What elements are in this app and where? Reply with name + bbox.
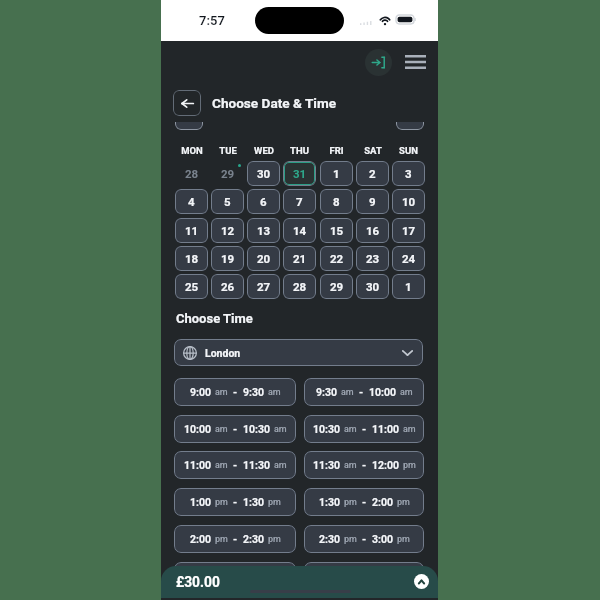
button[interactable]: 1 bbox=[320, 161, 353, 186]
staticText: 11:30 bbox=[313, 459, 341, 471]
staticText: am bbox=[215, 424, 228, 435]
staticText: 6 bbox=[260, 195, 267, 208]
staticText: pm bbox=[268, 534, 281, 545]
button[interactable]: 5 bbox=[211, 189, 244, 214]
staticText: 15 bbox=[330, 224, 344, 237]
button[interactable]: 26 bbox=[211, 274, 244, 299]
button[interactable]: 8 bbox=[320, 189, 353, 214]
staticText: SAT bbox=[364, 145, 382, 156]
button[interactable]: 9 bbox=[356, 189, 389, 214]
staticText: 24 bbox=[402, 252, 416, 265]
button[interactable]: Menu bbox=[398, 48, 432, 76]
button[interactable]: Sign in bbox=[365, 49, 392, 76]
staticText: - bbox=[233, 533, 238, 545]
button[interactable]: Expand details bbox=[414, 574, 429, 589]
staticText: 26 bbox=[221, 280, 235, 293]
button[interactable]: 30 bbox=[247, 161, 280, 186]
button[interactable]: 2:30 bbox=[304, 525, 424, 553]
button[interactable]: 18 bbox=[175, 246, 208, 271]
staticText: 7 bbox=[296, 195, 303, 208]
button[interactable]: 10:30 bbox=[304, 415, 424, 443]
staticText: pm bbox=[344, 497, 357, 508]
button[interactable]: 2:00 bbox=[174, 525, 296, 553]
staticText: pm bbox=[397, 534, 410, 545]
staticText: 2 bbox=[369, 167, 376, 180]
staticText: £30.00 bbox=[176, 574, 220, 590]
button[interactable]: 15 bbox=[320, 218, 353, 243]
button[interactable]: 7 bbox=[283, 189, 316, 214]
staticText: 10:00 bbox=[184, 423, 212, 435]
staticText: am bbox=[341, 387, 354, 398]
staticText: 5 bbox=[224, 195, 231, 208]
button[interactable]: Previous month bbox=[175, 104, 203, 130]
button[interactable]: 25 bbox=[175, 274, 208, 299]
staticText: 21 bbox=[293, 252, 307, 265]
button[interactable]: 10:00 bbox=[174, 415, 296, 443]
button[interactable]: 30 bbox=[356, 274, 389, 299]
staticText: 10:30 bbox=[243, 423, 271, 435]
button[interactable]: 14 bbox=[283, 218, 316, 243]
button[interactable]: 9:30 bbox=[304, 378, 424, 406]
button[interactable]: 13 bbox=[247, 218, 280, 243]
staticText: pm bbox=[215, 497, 228, 508]
button[interactable]: 19 bbox=[211, 246, 244, 271]
button[interactable]: 21 bbox=[283, 246, 316, 271]
button[interactable]: London bbox=[174, 339, 423, 366]
staticText: TUE bbox=[219, 145, 237, 156]
staticText: am bbox=[274, 424, 287, 435]
staticText: 30 bbox=[257, 167, 271, 180]
button[interactable]: 23 bbox=[356, 246, 389, 271]
staticText: am bbox=[274, 460, 287, 471]
button[interactable]: 11 bbox=[175, 218, 208, 243]
staticText: 9:30 bbox=[316, 386, 338, 398]
staticText: 3:00 bbox=[190, 570, 212, 582]
staticText: 18 bbox=[185, 252, 199, 265]
staticText: Choose Date & Time bbox=[212, 95, 337, 111]
button[interactable]: 31 bbox=[284, 162, 315, 185]
button[interactable]: 12 bbox=[211, 218, 244, 243]
button[interactable]: 1:00 bbox=[174, 488, 296, 516]
staticText: 19 bbox=[221, 252, 235, 265]
button[interactable]: 3:00 bbox=[174, 562, 296, 590]
staticText: pm bbox=[403, 460, 416, 471]
staticText: - bbox=[362, 423, 367, 435]
staticText: 2:30 bbox=[319, 533, 341, 545]
button[interactable]: 24 bbox=[392, 246, 425, 271]
button[interactable]: 16 bbox=[356, 218, 389, 243]
staticText: 12:00 bbox=[372, 459, 400, 471]
button[interactable]: 20 bbox=[247, 246, 280, 271]
staticText: - bbox=[362, 496, 367, 508]
staticText: London bbox=[205, 347, 241, 359]
button[interactable]: 10 bbox=[392, 189, 425, 214]
button[interactable]: 11:00 bbox=[174, 451, 296, 479]
staticText: am bbox=[344, 460, 357, 471]
staticText: 20 bbox=[257, 252, 271, 265]
button[interactable]: Next month bbox=[396, 104, 424, 130]
button[interactable]: 27 bbox=[247, 274, 280, 299]
button[interactable]: 4 bbox=[175, 189, 208, 214]
staticText: am bbox=[268, 387, 281, 398]
button[interactable]: 2 bbox=[356, 161, 389, 186]
button[interactable]: 9:00 bbox=[174, 378, 296, 406]
button[interactable]: 1 bbox=[392, 274, 425, 299]
staticText: am bbox=[215, 460, 228, 471]
staticText: 1 bbox=[405, 280, 412, 293]
button[interactable]: Back bbox=[173, 90, 201, 116]
button[interactable]: 1:30 bbox=[304, 488, 424, 516]
button[interactable]: 3 bbox=[392, 161, 425, 186]
button[interactable]: 17 bbox=[392, 218, 425, 243]
staticText: 28 bbox=[185, 167, 199, 180]
staticText: 11:00 bbox=[184, 459, 212, 471]
staticText: 1:30 bbox=[319, 496, 341, 508]
button[interactable]: 3:30 bbox=[304, 562, 424, 590]
button[interactable]: 11:30 bbox=[304, 451, 424, 479]
button[interactable]: 22 bbox=[320, 246, 353, 271]
button[interactable]: 28 bbox=[283, 274, 316, 299]
button[interactable]: 6 bbox=[247, 189, 280, 214]
button[interactable]: 29 bbox=[320, 274, 353, 299]
staticText: 23 bbox=[366, 252, 380, 265]
staticText: 9 bbox=[369, 195, 376, 208]
